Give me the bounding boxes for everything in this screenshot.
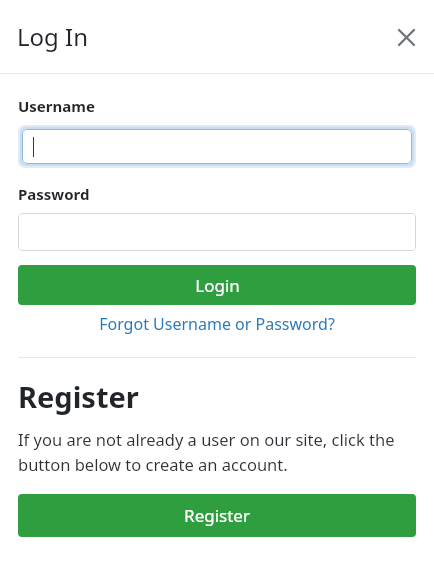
staticText: Register bbox=[184, 504, 250, 527]
button[interactable]: Register bbox=[18, 494, 416, 537]
staticText: Password bbox=[18, 184, 90, 204]
staticText: If you are not already a user on our sit… bbox=[18, 428, 416, 476]
staticText: Login bbox=[195, 274, 240, 297]
staticText: Forgot Username or Password? bbox=[99, 313, 335, 335]
staticText: Register bbox=[18, 377, 139, 416]
button[interactable] bbox=[22, 129, 412, 164]
button[interactable] bbox=[18, 213, 416, 251]
button[interactable]: Close bbox=[384, 15, 428, 59]
staticText: Username bbox=[18, 96, 95, 116]
button[interactable]: Forgot Username or Password? bbox=[18, 313, 416, 335]
staticText: Log In bbox=[17, 20, 89, 53]
button[interactable]: Login bbox=[18, 265, 416, 305]
